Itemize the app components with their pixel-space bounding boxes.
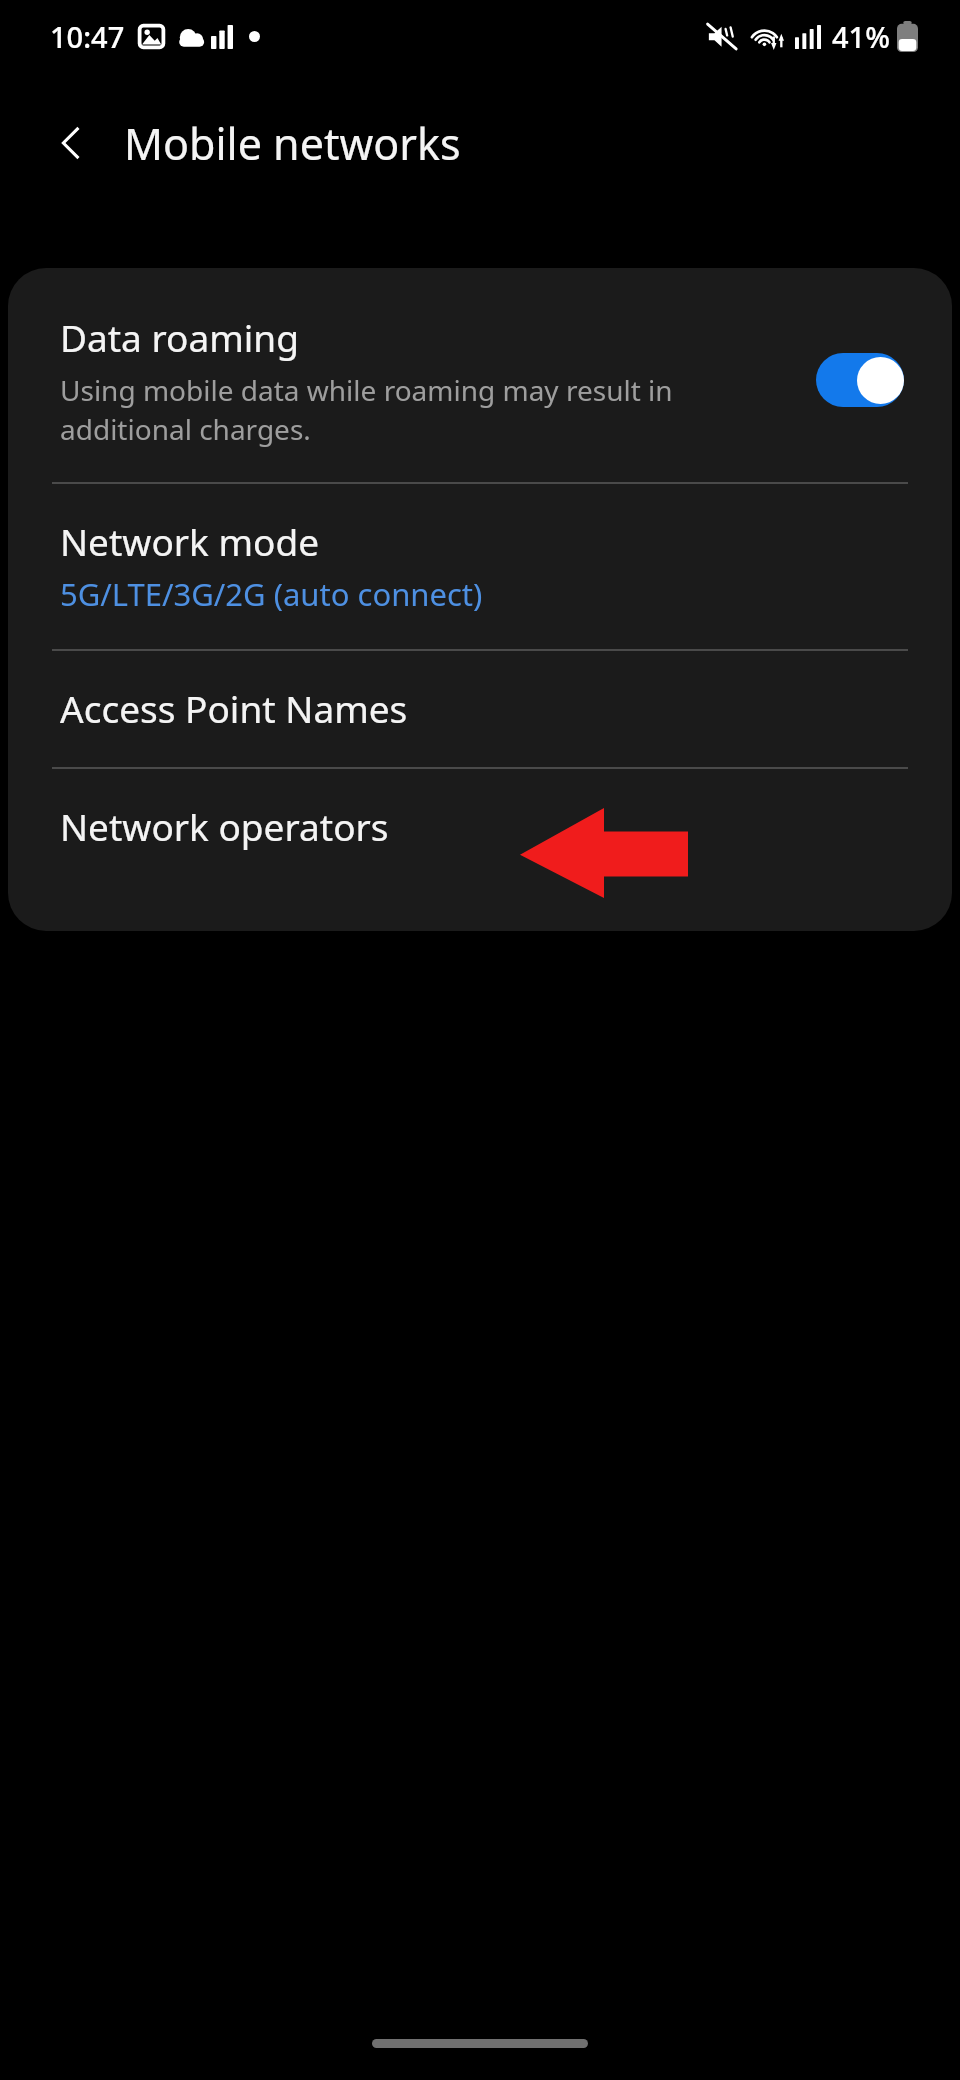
button[interactable]: Back [36,107,108,179]
button[interactable]: Access Point Names [8,651,952,767]
button[interactable]: Network mode [8,484,952,649]
button[interactable]: Data roaming [8,268,952,482]
staticText: 41% [832,17,890,56]
staticText: Network mode [60,516,320,566]
button[interactable]: Network operators [8,769,952,885]
staticText: Mobile networks [124,114,461,173]
staticText: 5G/LTE/3G/2G (auto connect) [60,573,483,615]
staticText: 10:47 [50,17,125,56]
staticText: Network operators [60,801,389,851]
staticText: Data roaming [60,312,299,362]
staticText: Using mobile data while roaming may resu… [60,371,792,448]
button[interactable]: Data roaming [812,350,908,410]
staticText: Access Point Names [60,683,408,733]
